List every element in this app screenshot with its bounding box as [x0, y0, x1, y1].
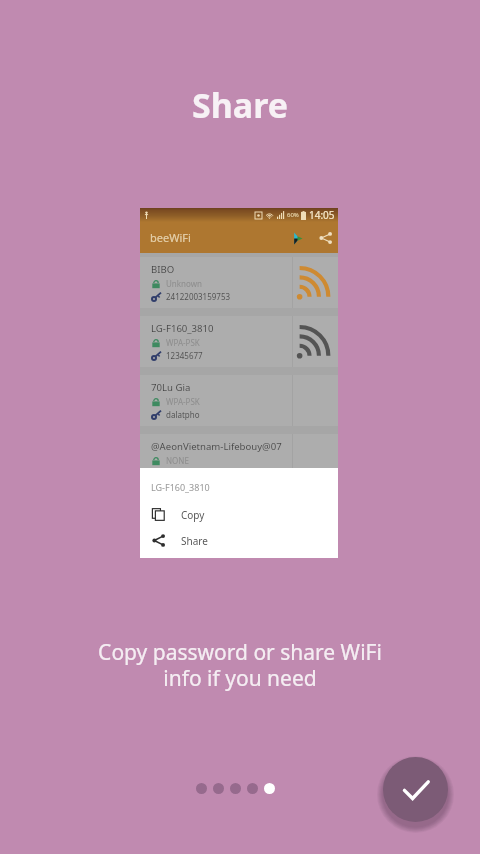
button[interactable]: Done	[383, 757, 448, 822]
staticText: 24122003159753	[166, 291, 231, 302]
button[interactable]: @AeonVietnam-Lifebouy@07	[140, 434, 338, 485]
staticText: 70Lu Gia	[151, 381, 191, 394]
staticText: Unknown	[166, 278, 202, 289]
staticText: LG-F160_3810	[151, 481, 210, 493]
button[interactable]: BIBO	[140, 257, 338, 308]
button[interactable]: Share	[317, 230, 333, 246]
staticText: @AeonVietnam-Lifebouy@07	[151, 440, 282, 453]
staticText: 14:05	[309, 208, 335, 222]
button[interactable]: LG-F160_3810	[140, 316, 338, 367]
staticText: Copy password or share WiFi info if you …	[0, 638, 480, 693]
button[interactable]: 70Lu Gia	[140, 375, 338, 426]
staticText: 60%	[287, 211, 299, 219]
staticText: BIBO	[151, 263, 175, 276]
staticText: dalatpho	[166, 409, 200, 420]
staticText: Copy	[181, 508, 205, 522]
staticText: Share	[181, 534, 208, 548]
staticText: LG-F160_3810	[151, 322, 214, 335]
staticText: Share	[0, 82, 480, 128]
button[interactable]: Copy	[140, 505, 338, 524]
staticText: NONE	[166, 455, 189, 466]
staticText: WPA-PSK	[166, 337, 200, 348]
staticText: 12345677	[166, 350, 203, 361]
button[interactable]: Play store	[290, 230, 306, 246]
button[interactable]: Share	[140, 531, 338, 550]
staticText: WPA-PSK	[166, 396, 200, 407]
staticText: beeWiFi	[150, 230, 191, 245]
